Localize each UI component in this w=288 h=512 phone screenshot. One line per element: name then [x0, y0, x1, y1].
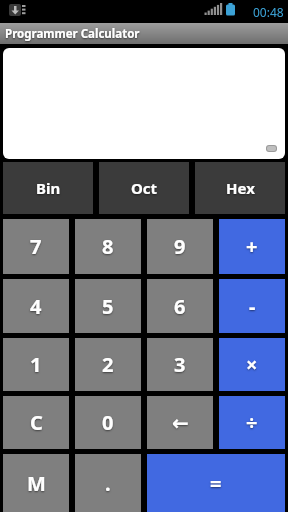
staticText: ← [172, 411, 189, 434]
button[interactable]: - [219, 279, 285, 333]
button[interactable]: × [219, 338, 285, 391]
button[interactable]: 3 [147, 338, 213, 391]
staticText: 3 [174, 351, 186, 378]
button[interactable]: Oct [99, 162, 189, 214]
staticText: + [246, 233, 258, 260]
staticText: C [30, 409, 43, 436]
staticText: 1 [30, 351, 42, 378]
staticText: M [27, 470, 46, 497]
button[interactable]: 5 [75, 279, 141, 333]
staticText: ÷ [246, 409, 258, 436]
staticText: Oct [131, 178, 158, 198]
button[interactable]: ← [147, 396, 213, 449]
button[interactable]: ÷ [219, 396, 285, 449]
staticText: Hex [226, 178, 255, 198]
button[interactable]: 9 [147, 219, 213, 274]
button[interactable]: 4 [3, 279, 69, 333]
staticText: 5 [102, 293, 114, 320]
button[interactable]: Hex [195, 162, 285, 214]
button[interactable]: = [147, 454, 285, 512]
button[interactable]: + [219, 219, 285, 274]
staticText: Bin [36, 178, 61, 198]
button[interactable]: Bin [3, 162, 93, 214]
staticText: 4 [30, 293, 42, 320]
staticText: 2 [102, 351, 114, 378]
staticText: . [105, 470, 111, 497]
staticText: 00:48 [253, 4, 284, 20]
staticText: - [249, 293, 256, 320]
button[interactable]: 8 [75, 219, 141, 274]
button[interactable]: C [3, 396, 69, 449]
staticText: = [210, 470, 222, 497]
staticText: 0 [102, 409, 114, 436]
staticText: 6 [174, 293, 186, 320]
staticText: × [246, 351, 258, 378]
button[interactable]: 2 [75, 338, 141, 391]
button[interactable]: 7 [3, 219, 69, 274]
button[interactable]: 1 [3, 338, 69, 391]
button[interactable]: . [75, 454, 141, 512]
staticText: Programmer Calculator [5, 26, 140, 42]
button[interactable]: 6 [147, 279, 213, 333]
staticText: 9 [174, 233, 186, 260]
button[interactable]: 0 [75, 396, 141, 449]
staticText: 8 [102, 233, 114, 260]
button[interactable]: M [3, 454, 69, 512]
staticText: 7 [30, 233, 42, 260]
